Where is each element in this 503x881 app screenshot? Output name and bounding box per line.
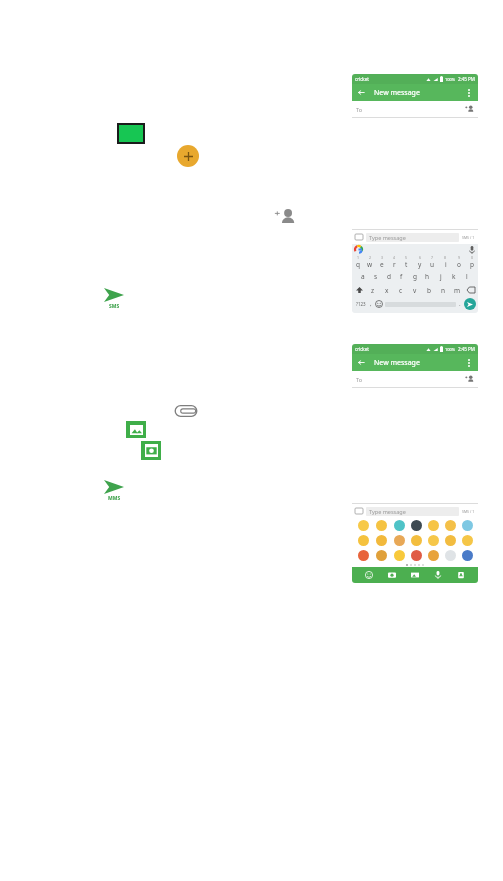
button[interactable] bbox=[408, 518, 425, 533]
button[interactable]: Backspace bbox=[464, 283, 478, 297]
button[interactable]: . bbox=[456, 297, 464, 311]
button[interactable] bbox=[354, 548, 372, 563]
button[interactable]: 9 bbox=[452, 255, 465, 269]
button[interactable]: Add recipient bbox=[465, 105, 474, 113]
button[interactable] bbox=[355, 246, 362, 253]
staticText: j bbox=[440, 272, 442, 281]
staticText: Type message bbox=[369, 234, 406, 241]
button[interactable]: h bbox=[421, 269, 434, 283]
button[interactable]: s bbox=[369, 269, 382, 283]
button[interactable] bbox=[459, 518, 476, 533]
staticText: New message bbox=[374, 88, 420, 98]
button[interactable]: ?123 bbox=[354, 297, 367, 311]
button[interactable]: Back bbox=[352, 354, 478, 371]
button[interactable]: Contact bbox=[455, 569, 467, 581]
staticText: p bbox=[470, 260, 474, 269]
button[interactable]: c bbox=[394, 283, 408, 297]
button[interactable]: , bbox=[367, 297, 375, 311]
button[interactable]: x bbox=[380, 283, 394, 297]
button[interactable] bbox=[425, 518, 442, 533]
button[interactable]: d bbox=[382, 269, 395, 283]
staticText: New message bbox=[374, 358, 420, 368]
button[interactable] bbox=[372, 548, 390, 563]
button[interactable]: Type message bbox=[366, 233, 459, 242]
button[interactable]: Gallery bbox=[409, 569, 421, 581]
button[interactable]: Emoji bbox=[363, 569, 375, 581]
staticText: g bbox=[413, 272, 417, 281]
button[interactable]: Add recipient bbox=[274, 208, 296, 226]
button[interactable] bbox=[408, 548, 425, 563]
button[interactable]: 1 bbox=[352, 255, 364, 269]
button[interactable] bbox=[390, 533, 408, 548]
button[interactable]: l bbox=[460, 269, 473, 283]
staticText: 100% bbox=[445, 77, 456, 82]
button[interactable]: New message bbox=[177, 145, 199, 167]
staticText: s bbox=[374, 272, 378, 281]
button[interactable]: 7 bbox=[426, 255, 439, 269]
button[interactable]: f bbox=[395, 269, 408, 283]
staticText: x bbox=[385, 286, 389, 295]
button[interactable]: 4 bbox=[388, 255, 400, 269]
button[interactable]: Insert picture bbox=[126, 421, 146, 438]
button[interactable]: Take photo bbox=[141, 441, 161, 460]
button[interactable]: More options bbox=[464, 88, 473, 97]
button[interactable]: Send bbox=[464, 298, 476, 310]
button[interactable] bbox=[372, 533, 390, 548]
button[interactable]: b bbox=[422, 283, 436, 297]
button[interactable]: Back bbox=[357, 88, 366, 97]
button[interactable]: Add recipient bbox=[465, 375, 474, 383]
button[interactable]: a bbox=[357, 269, 369, 283]
button[interactable]: Attach bbox=[174, 402, 198, 420]
button[interactable]: 5 bbox=[400, 255, 413, 269]
button[interactable]: MMS bbox=[104, 480, 124, 502]
staticText: h bbox=[425, 272, 430, 281]
button[interactable] bbox=[372, 518, 390, 533]
button[interactable]: SMS bbox=[104, 288, 124, 310]
button[interactable] bbox=[425, 533, 442, 548]
button[interactable]: z bbox=[366, 283, 380, 297]
button[interactable]: SMS type bbox=[355, 234, 363, 240]
button[interactable]: Back bbox=[352, 84, 478, 101]
button[interactable]: Type message bbox=[366, 507, 459, 516]
staticText: 1 bbox=[357, 255, 360, 260]
button[interactable]: g bbox=[408, 269, 421, 283]
button[interactable]: Back bbox=[357, 358, 366, 367]
button[interactable]: More options bbox=[464, 358, 473, 367]
button[interactable] bbox=[354, 533, 372, 548]
button[interactable]: v bbox=[408, 283, 422, 297]
button[interactable]: m bbox=[450, 283, 464, 297]
staticText: 2 bbox=[369, 255, 372, 260]
button[interactable]: k bbox=[447, 269, 460, 283]
button[interactable] bbox=[390, 548, 408, 563]
button[interactable] bbox=[354, 518, 372, 533]
button[interactable] bbox=[442, 518, 459, 533]
button[interactable]: 2 bbox=[364, 255, 376, 269]
button[interactable]: Voice bbox=[432, 569, 444, 581]
button[interactable]: 0 bbox=[465, 255, 478, 269]
button[interactable] bbox=[408, 533, 425, 548]
button[interactable]: To bbox=[352, 371, 478, 387]
button[interactable] bbox=[390, 518, 408, 533]
button[interactable] bbox=[425, 548, 442, 563]
staticText: d bbox=[387, 272, 391, 281]
button[interactable]: 8 bbox=[439, 255, 452, 269]
button[interactable]: Camera bbox=[386, 569, 398, 581]
button[interactable] bbox=[459, 548, 476, 563]
button[interactable] bbox=[442, 533, 459, 548]
button[interactable]: 6 bbox=[413, 255, 426, 269]
button[interactable]: Emoji bbox=[375, 300, 383, 308]
staticText: 2:45 PM bbox=[458, 76, 475, 82]
button[interactable]: To bbox=[352, 101, 478, 117]
staticText: MMS bbox=[108, 495, 121, 502]
button[interactable]: 3 bbox=[376, 255, 388, 269]
button[interactable] bbox=[459, 533, 476, 548]
staticText: 3 bbox=[381, 255, 384, 260]
button[interactable]: n bbox=[436, 283, 450, 297]
button[interactable] bbox=[442, 548, 459, 563]
button[interactable]: SMS type bbox=[355, 508, 363, 514]
button[interactable]: Shift bbox=[352, 283, 366, 297]
button[interactable]: Voice input bbox=[469, 246, 475, 254]
button[interactable]: j bbox=[434, 269, 447, 283]
